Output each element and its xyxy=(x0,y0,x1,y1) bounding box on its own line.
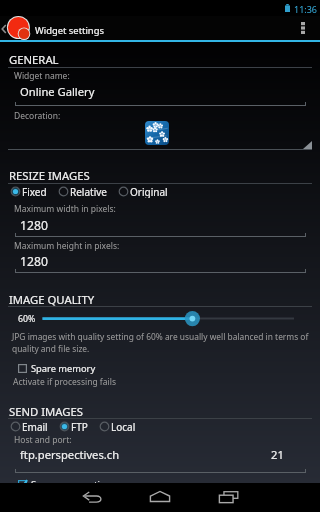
button[interactable]: More options xyxy=(290,16,316,42)
staticText: Fixed xyxy=(22,185,47,198)
staticText: Widget name: xyxy=(14,70,70,82)
button[interactable]: FTP xyxy=(58,420,98,433)
staticText: 1280 xyxy=(20,217,48,234)
button[interactable]: Local xyxy=(98,420,146,433)
staticText: Maximum height in pixels: xyxy=(14,240,120,252)
staticText: 60% xyxy=(18,313,36,325)
button[interactable]: Spare memory xyxy=(14,361,102,375)
staticText: Original xyxy=(130,185,168,198)
button[interactable]: Home xyxy=(136,483,184,512)
button[interactable]: 1280 xyxy=(16,216,306,235)
button[interactable]: ftp.perspectives.ch xyxy=(16,446,306,465)
button[interactable]: Fixed xyxy=(9,185,57,198)
button[interactable]: Relative xyxy=(57,185,117,198)
button[interactable]: Online Gallery xyxy=(16,82,306,102)
staticText: Relative xyxy=(70,185,107,198)
staticText: 1280 xyxy=(20,253,48,270)
staticText: IMAGE QUALITY xyxy=(9,292,95,307)
button[interactable]: Secure connection xyxy=(14,477,118,491)
staticText: SEND IMAGES xyxy=(9,404,84,419)
staticText: Spare memory xyxy=(31,362,96,375)
staticText: Email xyxy=(22,420,48,433)
button[interactable]: Original xyxy=(117,185,178,198)
staticText: 11:36 xyxy=(294,3,318,15)
staticText: FTP xyxy=(71,420,88,433)
staticText: Activate if processing fails xyxy=(13,376,117,388)
button[interactable]: Email xyxy=(9,420,58,433)
button[interactable]: Back xyxy=(68,483,116,512)
button[interactable]: Decoration image xyxy=(145,121,169,145)
staticText: RESIZE IMAGES xyxy=(9,168,90,183)
staticText: GENERAL xyxy=(9,52,59,67)
staticText: JPG images with quality setting of 60% a… xyxy=(12,331,311,355)
button[interactable]: 1280 xyxy=(16,252,306,271)
staticText: Local xyxy=(111,420,136,433)
staticText: Host and port: xyxy=(14,434,72,446)
staticText: Secure connection xyxy=(31,478,112,491)
staticText: Maximum width in pixels: xyxy=(14,203,116,215)
staticText: Widget settings xyxy=(35,24,104,37)
button[interactable]: Navigate up xyxy=(0,16,108,42)
staticText: ftp.perspectives.ch xyxy=(20,447,120,462)
button[interactable]: Recent apps xyxy=(204,483,252,512)
button[interactable]: Image quality slider xyxy=(38,310,306,327)
staticText: Online Gallery xyxy=(20,84,95,99)
staticText: Decoration: xyxy=(14,110,61,122)
staticText: 21 xyxy=(271,447,284,462)
